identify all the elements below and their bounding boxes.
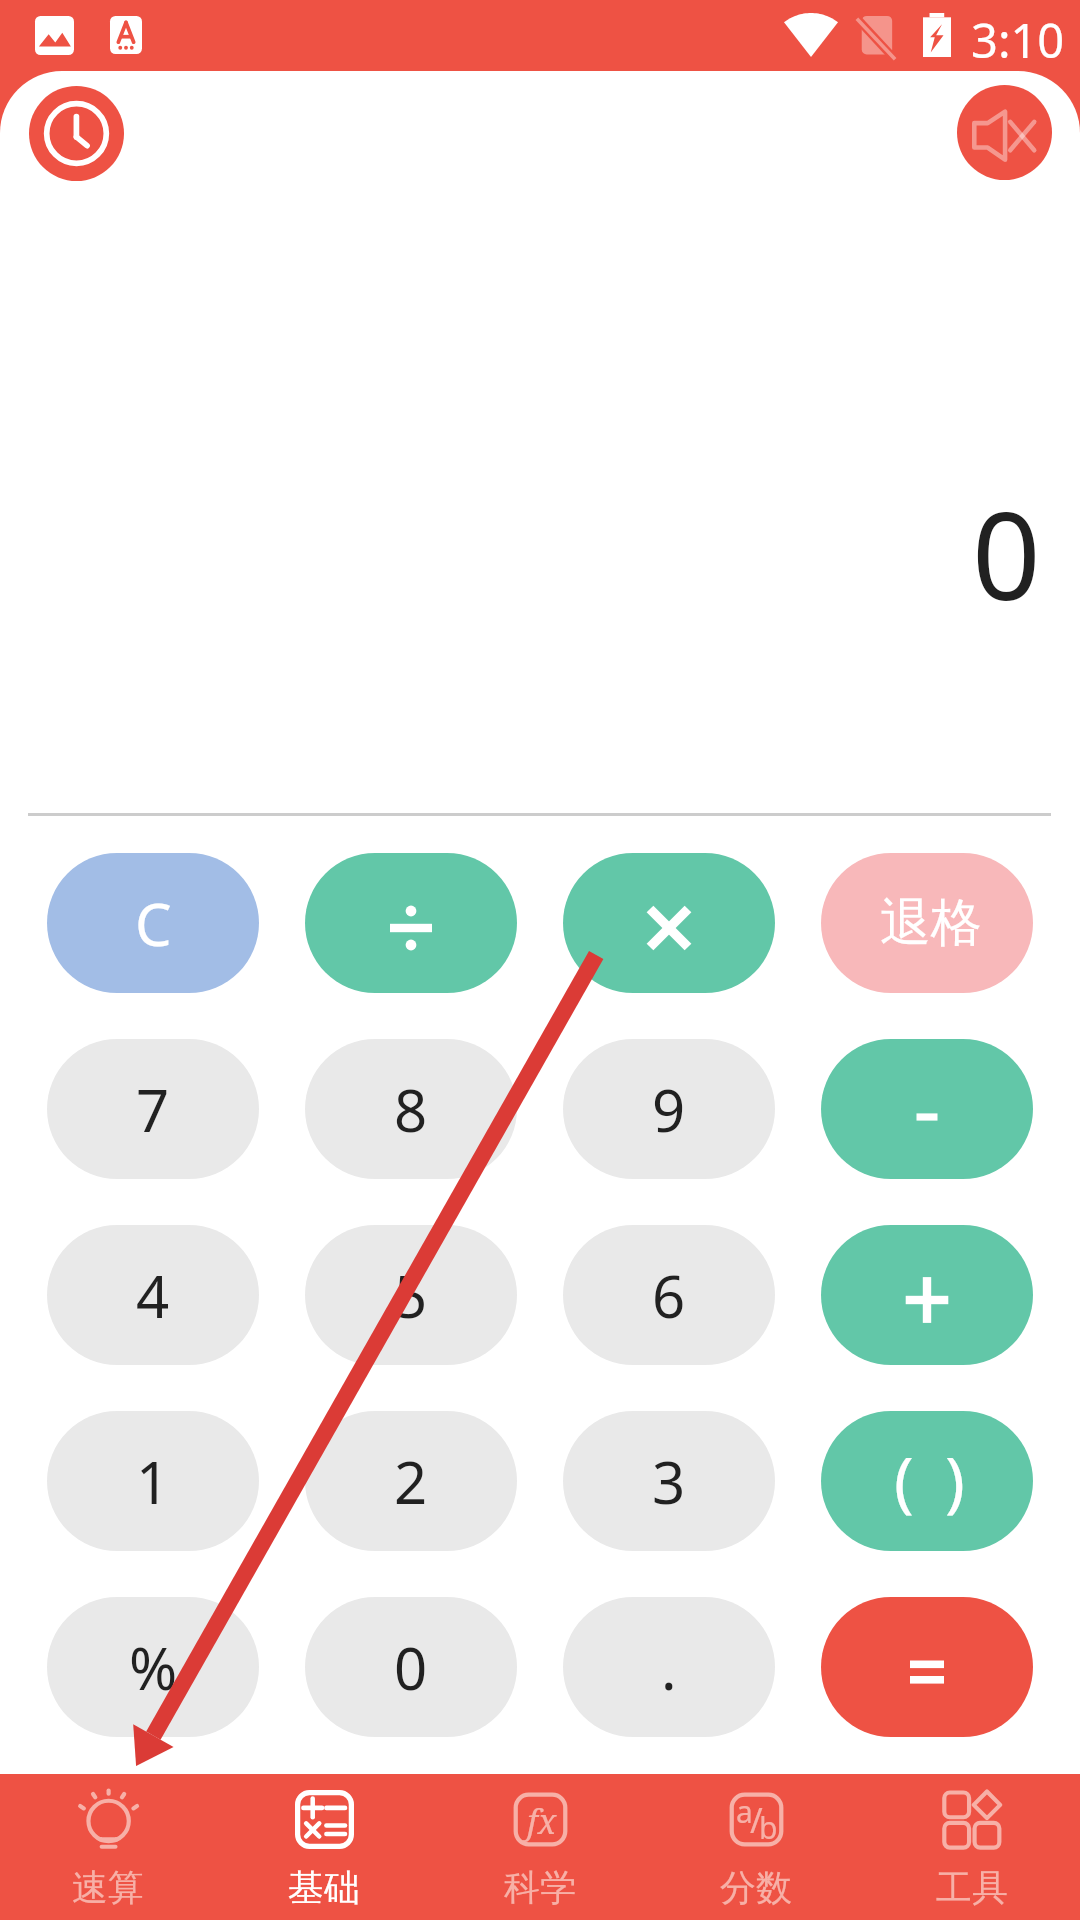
staticText: 9	[652, 1070, 686, 1149]
staticText: 基础	[288, 1865, 360, 1910]
button[interactable]: C	[47, 853, 259, 993]
staticText: 1	[136, 1442, 170, 1521]
staticText: 退格	[880, 891, 982, 955]
button[interactable]: 3	[563, 1411, 775, 1551]
staticText: 3	[652, 1442, 686, 1521]
button[interactable]: ( )	[821, 1411, 1033, 1551]
staticText: ( )	[894, 1434, 972, 1524]
staticText: 7	[136, 1070, 170, 1149]
button[interactable]: 1	[47, 1411, 259, 1551]
staticText: %	[129, 1628, 178, 1707]
staticText: 工具	[936, 1865, 1008, 1910]
staticText: 0	[972, 472, 1041, 635]
staticText: 5	[394, 1256, 428, 1335]
staticText: 6	[652, 1256, 686, 1335]
button[interactable]	[821, 1597, 1033, 1737]
button[interactable]: fx	[432, 1774, 648, 1920]
button[interactable]	[821, 1039, 1033, 1179]
button[interactable]: .	[563, 1597, 775, 1737]
button[interactable]	[563, 853, 775, 993]
staticText: 3:10	[971, 8, 1065, 72]
button[interactable]: 4	[47, 1225, 259, 1365]
button[interactable]: Mute	[957, 85, 1052, 180]
button[interactable]: 2	[305, 1411, 517, 1551]
staticText: 0	[394, 1628, 428, 1707]
button[interactable]: 速算	[0, 1774, 216, 1920]
button[interactable]: 8	[305, 1039, 517, 1179]
button[interactable]: 0	[305, 1597, 517, 1737]
staticText: /	[750, 1797, 763, 1843]
button[interactable]: 9	[563, 1039, 775, 1179]
button[interactable]: 6	[563, 1225, 775, 1365]
button[interactable]	[821, 1225, 1033, 1365]
staticText: 科学	[504, 1865, 576, 1910]
button[interactable]: a	[648, 1774, 864, 1920]
button[interactable]	[305, 853, 517, 993]
staticText: 分数	[720, 1865, 792, 1910]
staticText: .	[661, 1628, 677, 1707]
button[interactable]: History	[29, 86, 124, 181]
staticText: 8	[394, 1070, 428, 1149]
staticText: C	[135, 884, 172, 963]
staticText: 速算	[72, 1865, 144, 1910]
staticText: b	[759, 1807, 778, 1848]
button[interactable]: 7	[47, 1039, 259, 1179]
staticText: fx	[527, 1798, 557, 1844]
button[interactable]: 基础	[216, 1774, 432, 1920]
button[interactable]: %	[47, 1597, 259, 1737]
button[interactable]: 工具	[864, 1774, 1080, 1920]
staticText: 2	[394, 1442, 428, 1521]
button[interactable]: 退格	[821, 853, 1033, 993]
button[interactable]: 5	[305, 1225, 517, 1365]
staticText: 4	[136, 1256, 170, 1335]
staticText: a	[736, 1791, 753, 1832]
